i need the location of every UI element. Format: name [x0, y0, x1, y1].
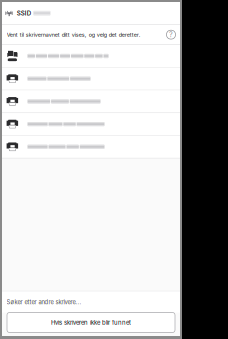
button[interactable] — [2, 113, 180, 136]
button[interactable] — [2, 90, 180, 113]
button[interactable]: Hvis skriveren ikke blir funnet — [7, 312, 175, 332]
button[interactable] — [2, 136, 180, 158]
staticText: SSID — [17, 9, 31, 17]
button[interactable] — [2, 45, 180, 68]
button[interactable] — [2, 68, 180, 90]
staticText: ? — [169, 30, 173, 39]
staticText: Vent til skrivernavnet ditt vises, og ve… — [7, 31, 141, 38]
button[interactable]: Hjelp — [166, 30, 175, 39]
staticText: Søker etter andre skrivere... — [6, 298, 81, 306]
staticText: Hvis skriveren ikke blir funnet — [51, 319, 131, 326]
